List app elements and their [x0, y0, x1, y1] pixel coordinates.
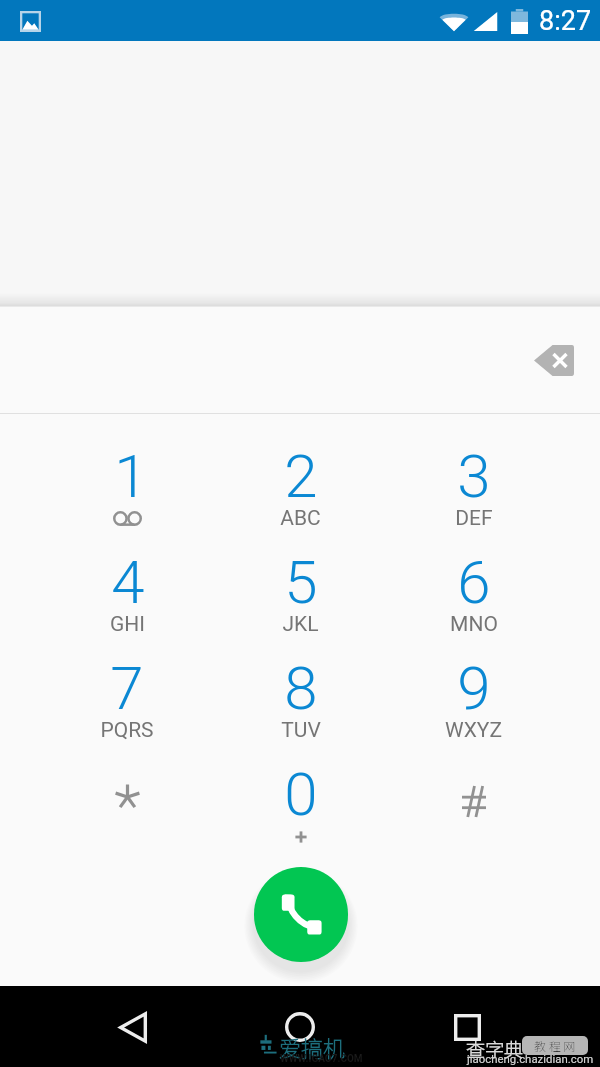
- staticText: TUV: [281, 718, 321, 743]
- staticText: 9: [457, 653, 491, 723]
- button[interactable]: 6: [387, 547, 560, 653]
- button[interactable]: 3: [387, 441, 560, 547]
- button[interactable]: [40, 759, 214, 865]
- staticText: 3: [457, 441, 491, 511]
- staticText: 教 程 网: [534, 1037, 576, 1054]
- staticText: JKL: [282, 612, 319, 637]
- staticText: 4: [111, 547, 145, 617]
- staticText: 0: [284, 759, 318, 829]
- button[interactable]: 5: [214, 547, 387, 653]
- button[interactable]: 7: [40, 653, 214, 759]
- staticText: MNO: [450, 612, 498, 637]
- staticText: 8:27: [539, 5, 592, 37]
- button[interactable]: Recents: [437, 997, 497, 1057]
- button[interactable]: [387, 759, 560, 865]
- staticText: 爱搞机: [279, 1031, 346, 1063]
- staticText: GHI: [110, 612, 145, 637]
- button[interactable]: Home: [270, 997, 330, 1057]
- staticText: WWW.IGAO7.COM: [280, 1053, 363, 1065]
- button[interactable]: 4: [40, 547, 214, 653]
- staticText: DEF: [455, 506, 493, 531]
- button[interactable]: 8: [214, 653, 387, 759]
- button[interactable]: Backspace: [524, 333, 582, 387]
- button[interactable]: Screenshot: [8, 0, 52, 41]
- button[interactable]: 1: [40, 441, 214, 547]
- button[interactable]: 9: [387, 653, 560, 759]
- staticText: 1: [114, 441, 148, 511]
- staticText: 7: [110, 653, 144, 723]
- staticText: 6: [457, 547, 491, 617]
- staticText: jiaocheng.chazidian.com: [467, 1052, 594, 1065]
- staticText: PQRS: [100, 718, 154, 743]
- button[interactable]: Back: [103, 997, 163, 1057]
- staticText: 2: [284, 441, 318, 511]
- staticText: 5: [284, 547, 318, 617]
- staticText: 8: [284, 653, 318, 723]
- staticText: WXYZ: [445, 718, 502, 743]
- button[interactable]: 0: [214, 759, 387, 865]
- staticText: ABC: [280, 506, 321, 531]
- button[interactable]: 2: [214, 441, 387, 547]
- staticText: 查字典: [466, 1035, 524, 1063]
- button[interactable]: Call: [254, 867, 348, 962]
